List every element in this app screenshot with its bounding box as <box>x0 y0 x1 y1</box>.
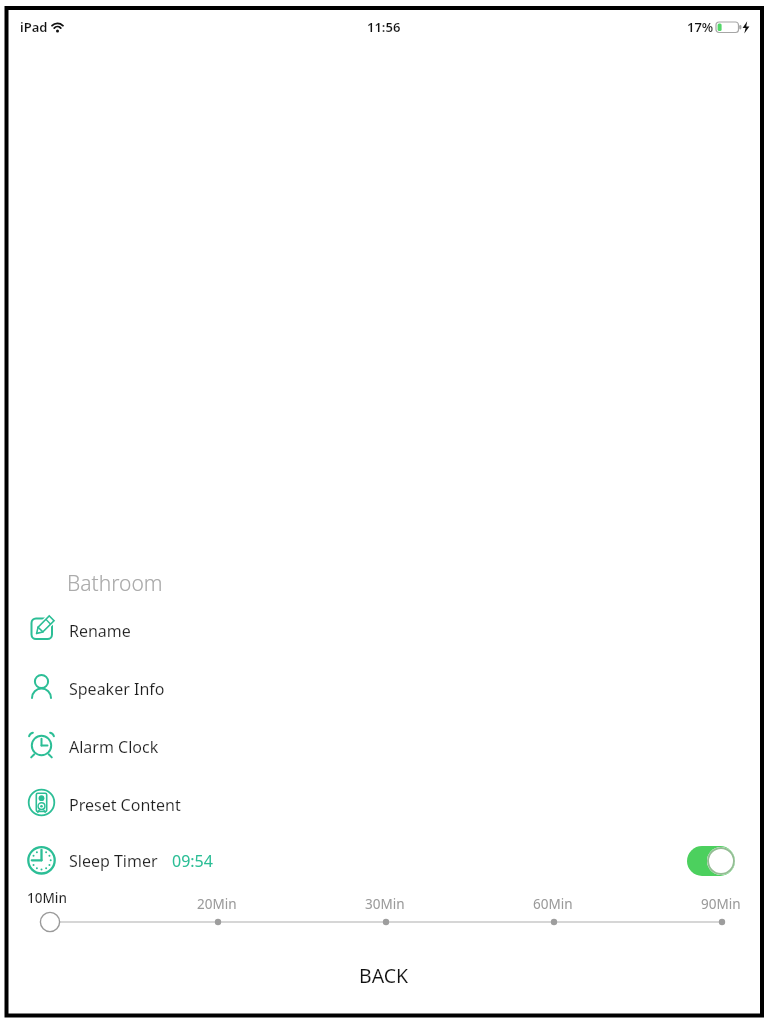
staticText: 20Min <box>197 895 237 913</box>
staticText: 90Min <box>701 895 741 913</box>
button[interactable]: Rename <box>0 609 768 653</box>
staticText: Bathroom <box>67 569 163 598</box>
button[interactable]: Speaker Info <box>0 667 768 711</box>
button[interactable]: Alarm Clock <box>0 725 768 769</box>
button[interactable]: Preset Content <box>0 783 768 827</box>
staticText: 11:56 <box>367 18 401 36</box>
button[interactable] <box>36 906 736 938</box>
staticText: Sleep Timer <box>69 850 158 872</box>
button[interactable]: Sleep Timer <box>0 839 768 883</box>
staticText: Speaker Info <box>69 678 165 700</box>
staticText: Rename <box>69 620 131 642</box>
staticText: 60Min <box>533 895 573 913</box>
staticText: 30Min <box>365 895 405 913</box>
staticText: iPad <box>20 18 48 36</box>
button[interactable] <box>687 846 735 876</box>
staticText: 10Min <box>27 889 67 907</box>
button[interactable]: BACK <box>0 955 768 995</box>
staticText: 17% <box>687 18 714 36</box>
staticText: Alarm Clock <box>69 736 159 758</box>
staticText: 09:54 <box>172 850 213 872</box>
staticText: BACK <box>359 962 409 989</box>
staticText: Preset Content <box>69 794 181 816</box>
